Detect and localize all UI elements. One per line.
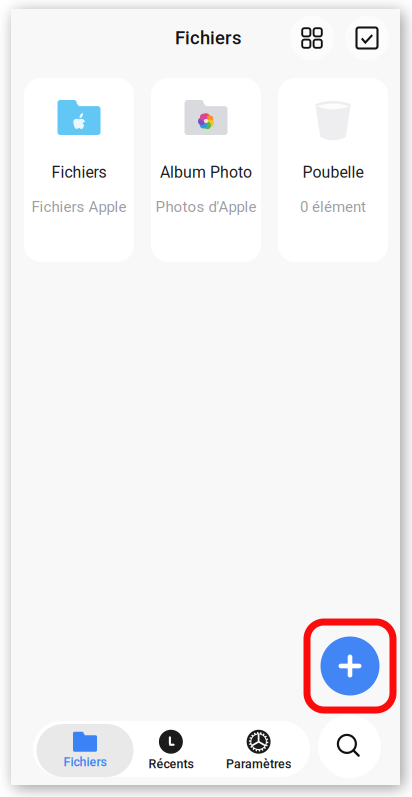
button[interactable]: Select [345, 16, 389, 60]
staticText: Paramètres [226, 757, 291, 771]
staticText: 0 élément [300, 198, 366, 216]
staticText: Poubelle [302, 163, 363, 182]
staticText: Récents [148, 757, 193, 771]
button[interactable]: Fichiers [24, 78, 134, 262]
staticText: Fichiers [63, 755, 106, 769]
staticText: Fichiers Apple [31, 198, 126, 216]
staticText: Album Photo [160, 163, 252, 182]
button[interactable]: Search [318, 715, 381, 778]
button[interactable]: Paramètres [214, 724, 304, 777]
button[interactable]: Grid view [290, 16, 334, 60]
button[interactable]: Poubelle [278, 78, 388, 262]
staticText: Fichiers [175, 27, 241, 49]
staticText: Photos d'Apple [155, 198, 256, 216]
staticText: Fichiers [51, 163, 106, 182]
button[interactable]: Récents [127, 724, 215, 777]
button[interactable]: Add [320, 636, 379, 695]
button[interactable]: Fichiers [36, 724, 133, 777]
button[interactable]: Album Photo [151, 78, 261, 262]
